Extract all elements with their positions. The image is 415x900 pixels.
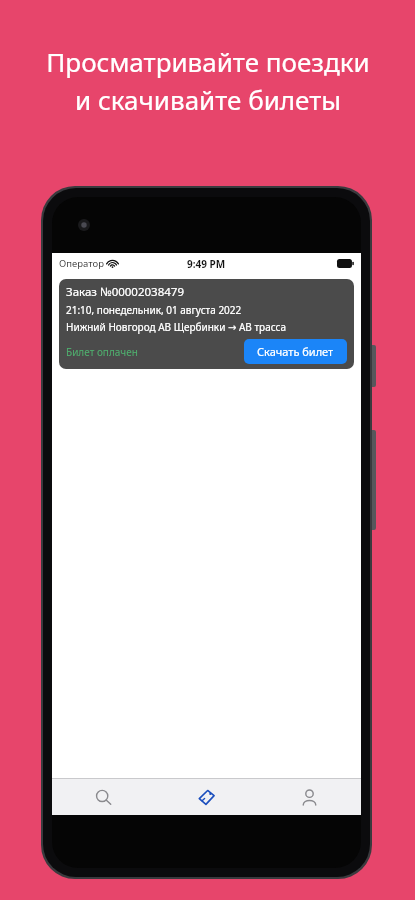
button[interactable]: Profile [258,779,361,815]
staticText: 21:10, понедельник, 01 августа 2022 [66,303,242,317]
staticText: Билет оплачен [66,345,138,359]
staticText: Скачать билет [257,344,334,359]
staticText: Оператор [59,257,104,270]
staticText: Нижний Новгород АВ Щербинки → АВ трасса [66,320,287,334]
staticText: Заказ №00002038479 [66,284,184,300]
button[interactable]: Заказ №00002038479 [59,279,354,369]
staticText: Просматривайте поездки [46,44,370,79]
button[interactable]: Скачать билет [244,339,347,364]
staticText: 9:49 PM [187,257,226,271]
staticText: и скачивайте билеты [75,82,341,117]
button[interactable]: Search [52,779,155,815]
button[interactable]: Tickets [155,779,258,815]
